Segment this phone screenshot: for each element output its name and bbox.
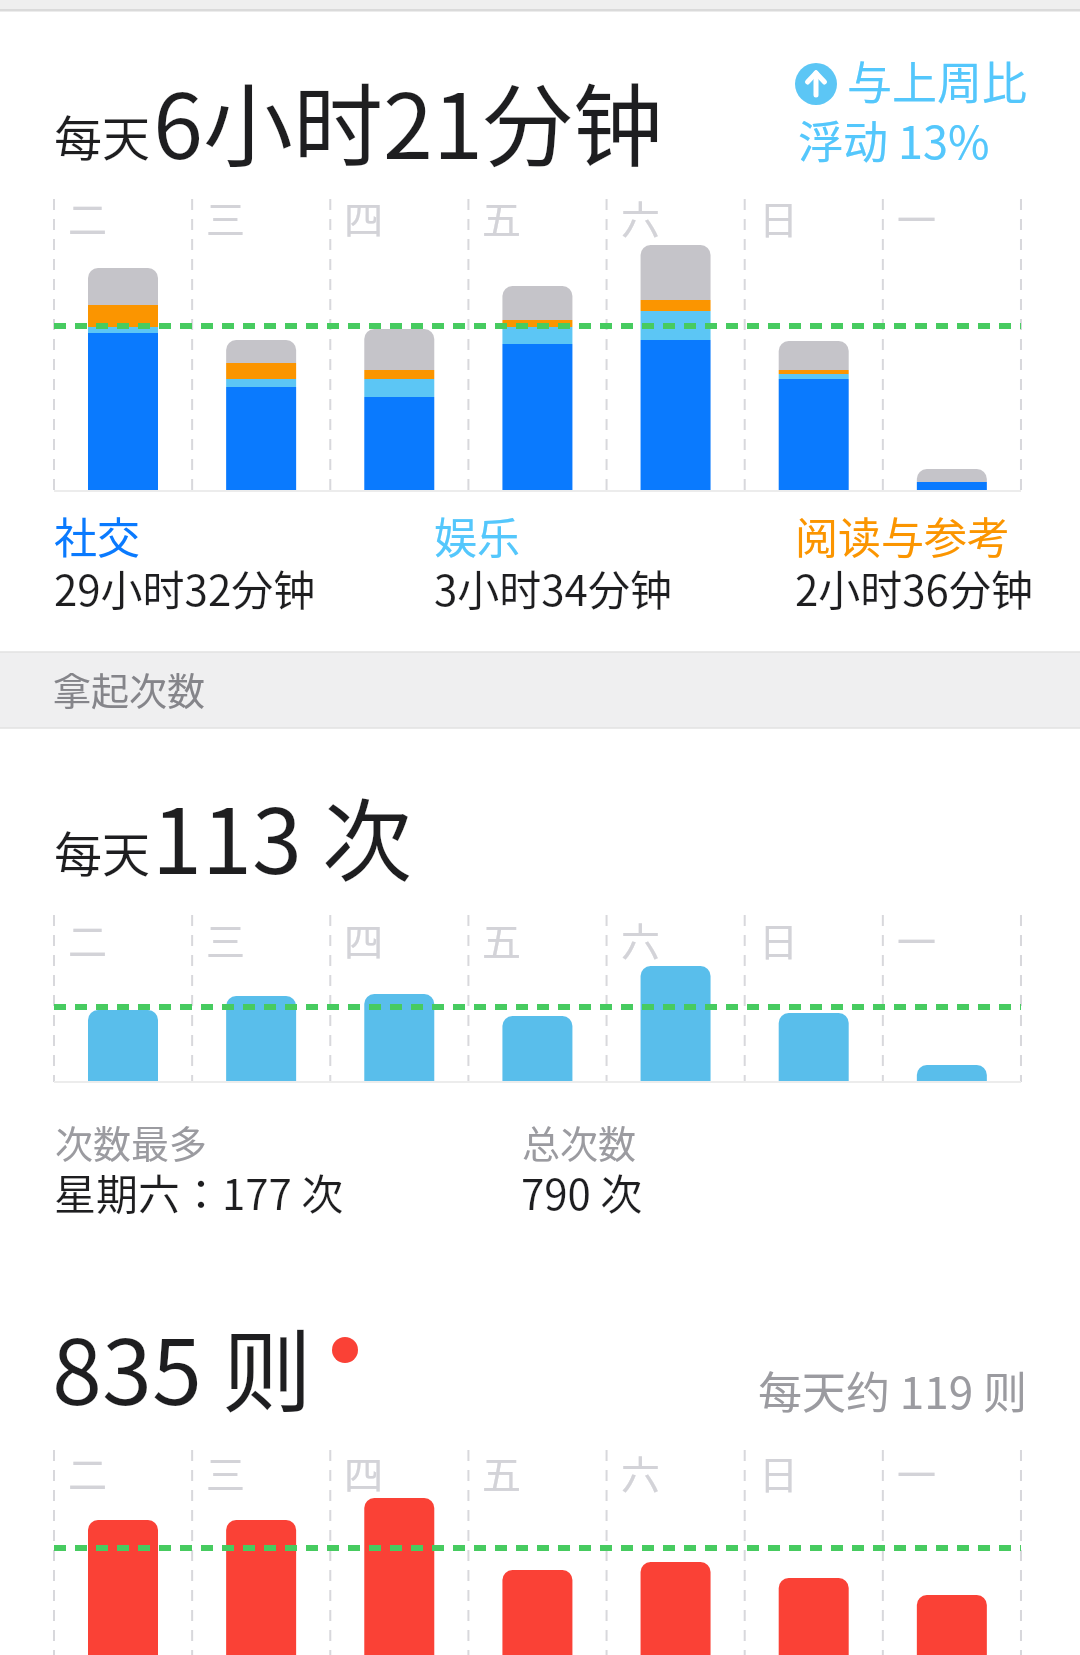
staticText: 29小时32分钟	[54, 557, 316, 618]
staticText: 二	[68, 911, 108, 967]
button[interactable]: 阅读与参考	[795, 500, 1075, 620]
staticText: 835 则	[52, 1301, 313, 1431]
staticText: 六	[621, 911, 661, 967]
staticText: 次数最多	[55, 1114, 208, 1169]
staticText: 每天约 119 则	[758, 1358, 1027, 1422]
button[interactable]: 总次数	[521, 1110, 771, 1220]
button[interactable]: 娱乐	[434, 500, 764, 620]
staticText: 一	[897, 911, 937, 967]
staticText: 每天	[54, 816, 151, 886]
staticText: 五	[482, 1444, 522, 1500]
staticText: 2小时36分钟	[795, 557, 1033, 618]
staticText: 3小时34分钟	[434, 557, 672, 618]
staticText: 四	[344, 1444, 384, 1500]
staticText: 一	[897, 1444, 937, 1500]
staticText: 二	[68, 1444, 108, 1500]
staticText: 五	[482, 189, 522, 245]
staticText: 四	[344, 189, 384, 245]
staticText: 娱乐	[434, 504, 520, 566]
staticText: 日	[759, 1444, 799, 1500]
staticText: 星期六：177 次	[54, 1161, 344, 1222]
staticText: 113 次	[152, 770, 413, 900]
button[interactable]: 社交	[54, 500, 384, 620]
staticText: 阅读与参考	[795, 504, 1010, 566]
button[interactable]: 与上周比	[780, 40, 1040, 170]
staticText: 与上周比	[847, 48, 1028, 113]
staticText: 三	[206, 1444, 246, 1500]
staticText: 五	[482, 911, 522, 967]
staticText: 总次数	[522, 1114, 637, 1169]
button[interactable]: 次数最多	[54, 1110, 394, 1220]
staticText: 日	[759, 189, 799, 245]
staticText: 每天	[54, 100, 151, 170]
staticText: 浮动 13%	[798, 107, 990, 172]
staticText: 一	[897, 189, 937, 245]
staticText: 六	[621, 1444, 661, 1500]
staticText: 六	[621, 189, 661, 245]
staticText: 日	[759, 911, 799, 967]
staticText: 790 次	[521, 1161, 643, 1222]
staticText: 二	[68, 189, 108, 245]
staticText: 拿起次数	[53, 661, 206, 716]
staticText: 6小时21分钟	[153, 55, 663, 185]
staticText: 社交	[54, 504, 140, 566]
staticText: 三	[206, 189, 246, 245]
staticText: 三	[206, 911, 246, 967]
staticText: 四	[344, 911, 384, 967]
